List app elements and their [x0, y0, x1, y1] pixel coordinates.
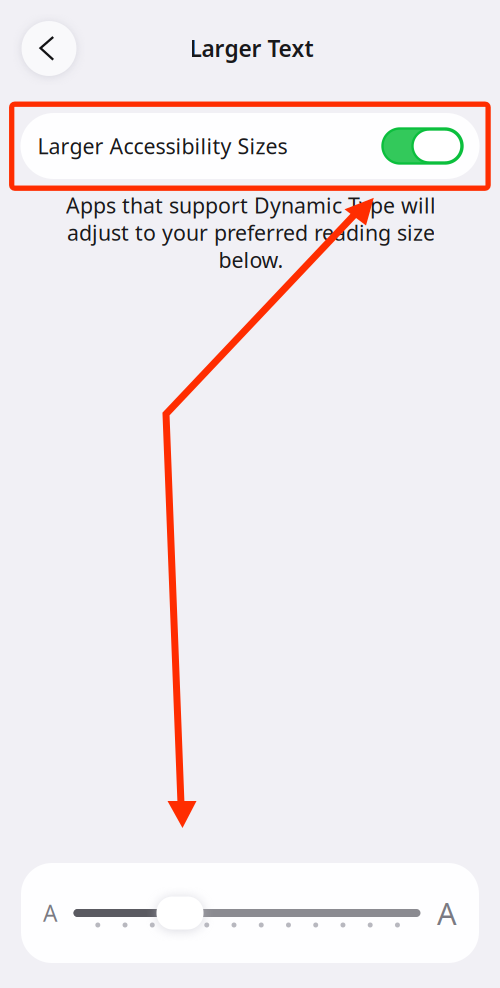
staticText: Apps that support Dynamic Type will [66, 191, 436, 219]
staticText: A [437, 893, 457, 933]
staticText: Larger Accessibility Sizes [37, 132, 287, 160]
button[interactable]: Larger Accessibility Sizes [20, 113, 479, 179]
staticText: below. [218, 246, 283, 274]
staticText: Larger Text [189, 33, 313, 63]
button[interactable]: Back [21, 21, 76, 76]
staticText: adjust to your preferred reading size [67, 218, 435, 247]
button[interactable]: Text size [21, 863, 479, 963]
staticText: A [43, 898, 57, 928]
